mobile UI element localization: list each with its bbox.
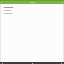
button[interactable] [1, 12, 63, 14]
button[interactable] [1, 6, 63, 8]
button[interactable]: Menu [0, 0, 64, 4]
button[interactable] [1, 9, 63, 11]
